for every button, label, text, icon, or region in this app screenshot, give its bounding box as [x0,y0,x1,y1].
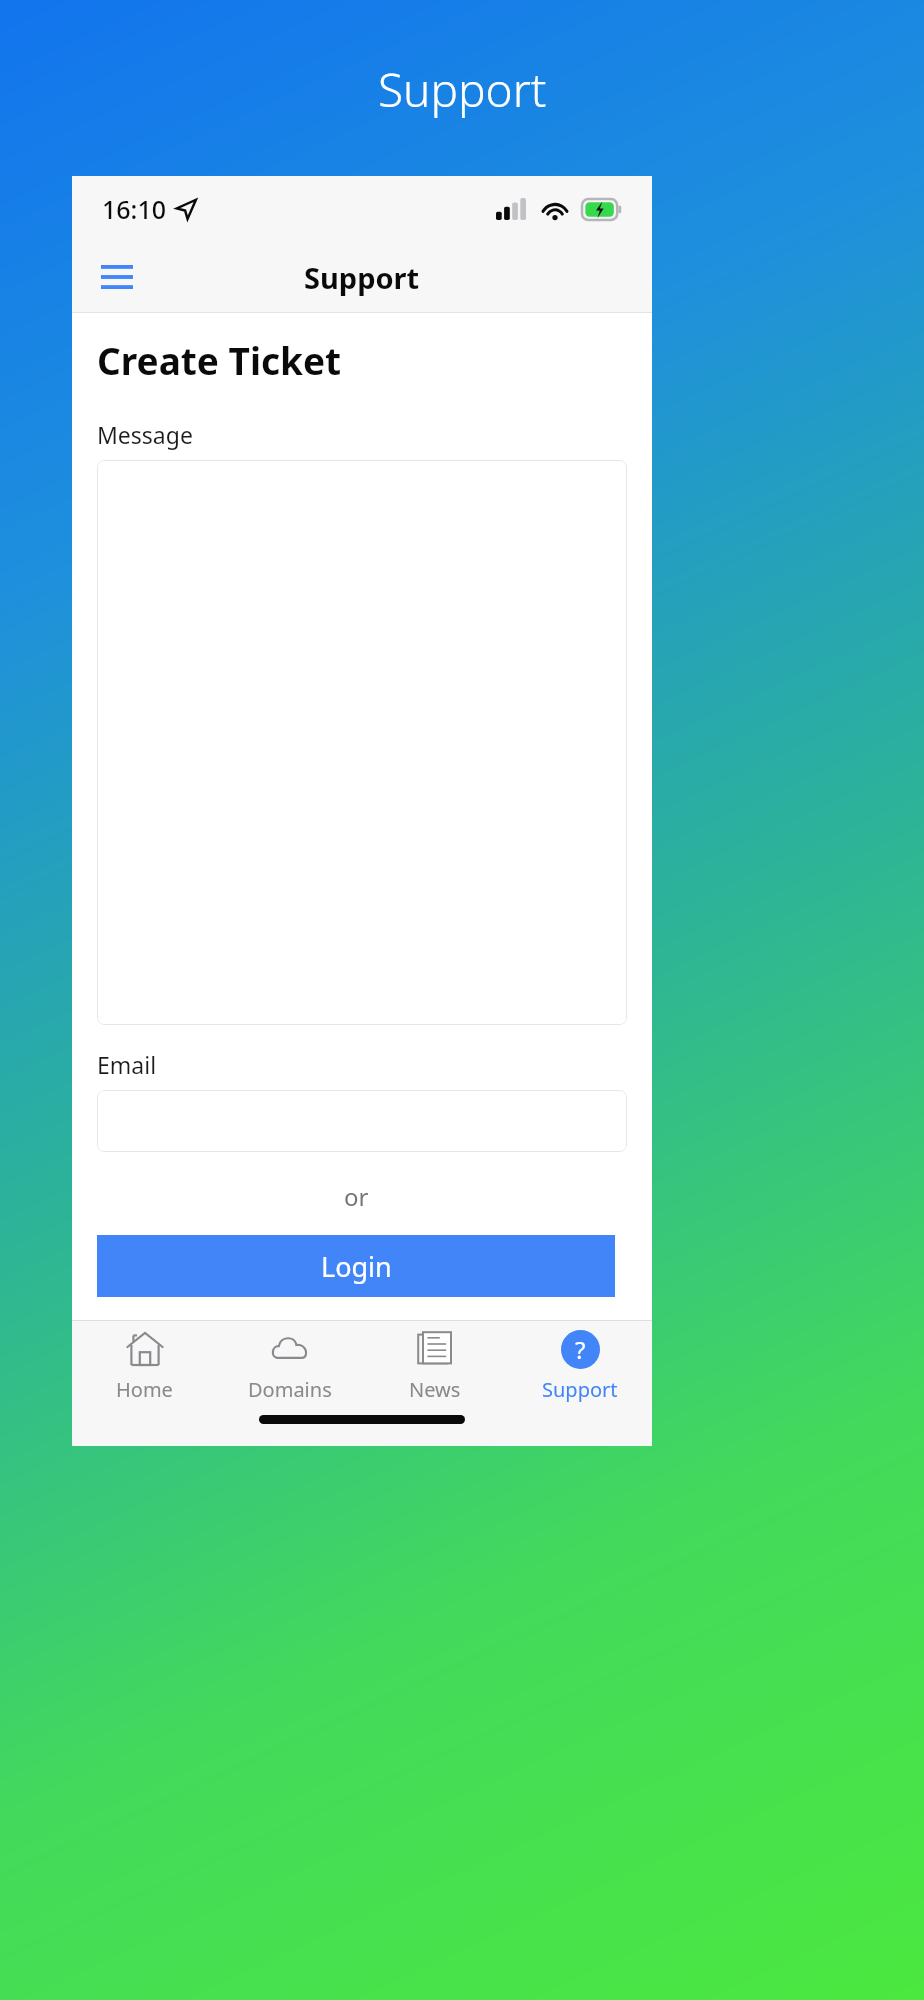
button[interactable]: News [362,1321,507,1409]
staticText: Message [97,419,193,450]
staticText: News [409,1376,461,1403]
staticText: Domains [248,1376,332,1403]
staticText: Support [542,1376,618,1403]
button[interactable]: ? [507,1321,652,1409]
button[interactable]: Home [72,1321,217,1409]
button[interactable] [97,1090,627,1152]
staticText: Email [97,1049,157,1080]
staticText: or [344,1180,369,1213]
staticText: Submit Ticket [276,1361,448,1398]
staticText: Login [321,1248,392,1285]
staticText: Support [378,58,547,121]
staticText: Create Ticket [97,335,342,385]
button[interactable]: Menu [90,250,144,304]
staticText: Support [304,258,420,297]
staticText: ? [575,1333,586,1366]
staticText: 16:10 [102,192,167,226]
button[interactable]: Login [97,1235,615,1297]
button[interactable]: Domains [217,1321,362,1409]
staticText: Home [116,1376,173,1403]
button[interactable]: Submit Ticket [97,1348,627,1410]
